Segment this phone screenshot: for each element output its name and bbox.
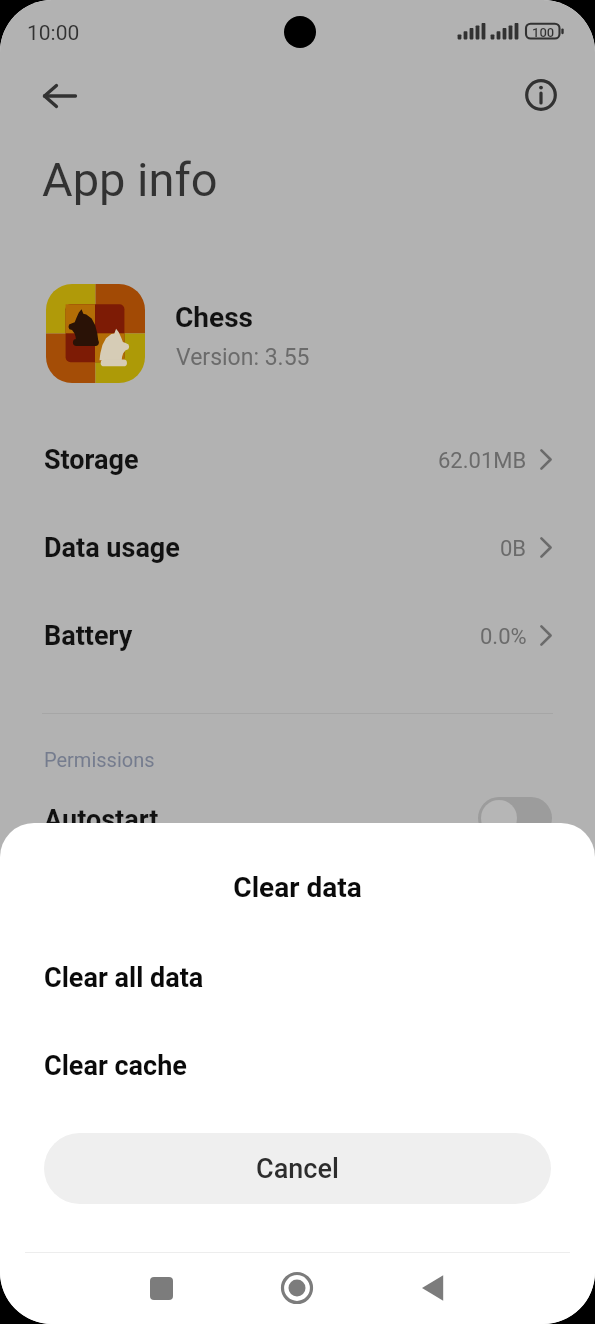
button[interactable]: Home bbox=[267, 1258, 327, 1318]
button[interactable]: Cancel bbox=[44, 1133, 551, 1204]
button[interactable]: Battery bbox=[0, 598, 595, 660]
staticText: Permissions bbox=[44, 748, 155, 771]
button[interactable]: Clear cache bbox=[0, 1036, 595, 1098]
staticText: Version: 3.55 bbox=[176, 344, 310, 371]
staticText: 0.0% bbox=[480, 624, 527, 650]
button[interactable]: Recent apps bbox=[131, 1258, 191, 1318]
staticText: Chess bbox=[175, 301, 253, 334]
staticText: Data usage bbox=[44, 532, 180, 564]
button[interactable]: App details bbox=[518, 72, 564, 118]
staticText: Autostart bbox=[44, 804, 159, 836]
staticText: Clear cache bbox=[44, 1050, 187, 1082]
button[interactable]: Back bbox=[403, 1258, 463, 1318]
staticText: Clear all data bbox=[44, 962, 204, 994]
button[interactable]: Storage bbox=[0, 422, 595, 484]
staticText: Storage bbox=[44, 444, 139, 476]
button[interactable]: Data usage bbox=[0, 510, 595, 572]
staticText: App info bbox=[42, 152, 218, 207]
staticText: 10:00 bbox=[27, 21, 80, 46]
button[interactable]: Clear all data bbox=[0, 948, 595, 1010]
staticText: 0B bbox=[500, 536, 527, 562]
staticText: Clear data bbox=[0, 871, 595, 904]
staticText: 100 bbox=[532, 25, 555, 40]
staticText: Cancel bbox=[256, 1153, 339, 1185]
staticText: Battery bbox=[44, 620, 133, 652]
button[interactable]: Back bbox=[36, 73, 82, 119]
staticText: 62.01MB bbox=[438, 448, 527, 474]
button[interactable]: Autostart bbox=[0, 788, 595, 850]
